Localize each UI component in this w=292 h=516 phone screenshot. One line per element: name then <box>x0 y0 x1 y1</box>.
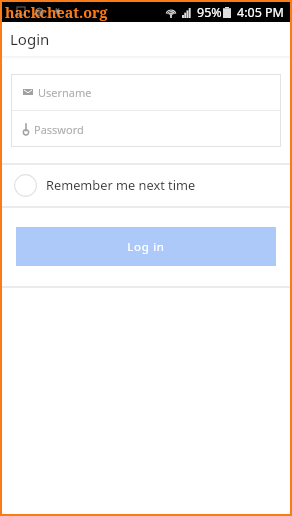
staticText: Login <box>10 29 50 49</box>
staticText: Log in <box>127 239 165 255</box>
button[interactable]: Remember me next time <box>2 165 290 206</box>
other: Remember me checkbox <box>14 174 37 197</box>
button[interactable]: Username <box>11 74 281 110</box>
button[interactable]: Password <box>11 111 281 147</box>
staticText: Remember me next time <box>46 176 196 193</box>
staticText: 4:05 PM <box>237 4 284 21</box>
staticText: Username <box>38 85 92 100</box>
staticText: Password <box>34 122 84 137</box>
staticText: hackcheat.org <box>5 3 108 22</box>
staticText: 95% <box>197 4 222 21</box>
button[interactable]: Log in <box>16 227 276 266</box>
